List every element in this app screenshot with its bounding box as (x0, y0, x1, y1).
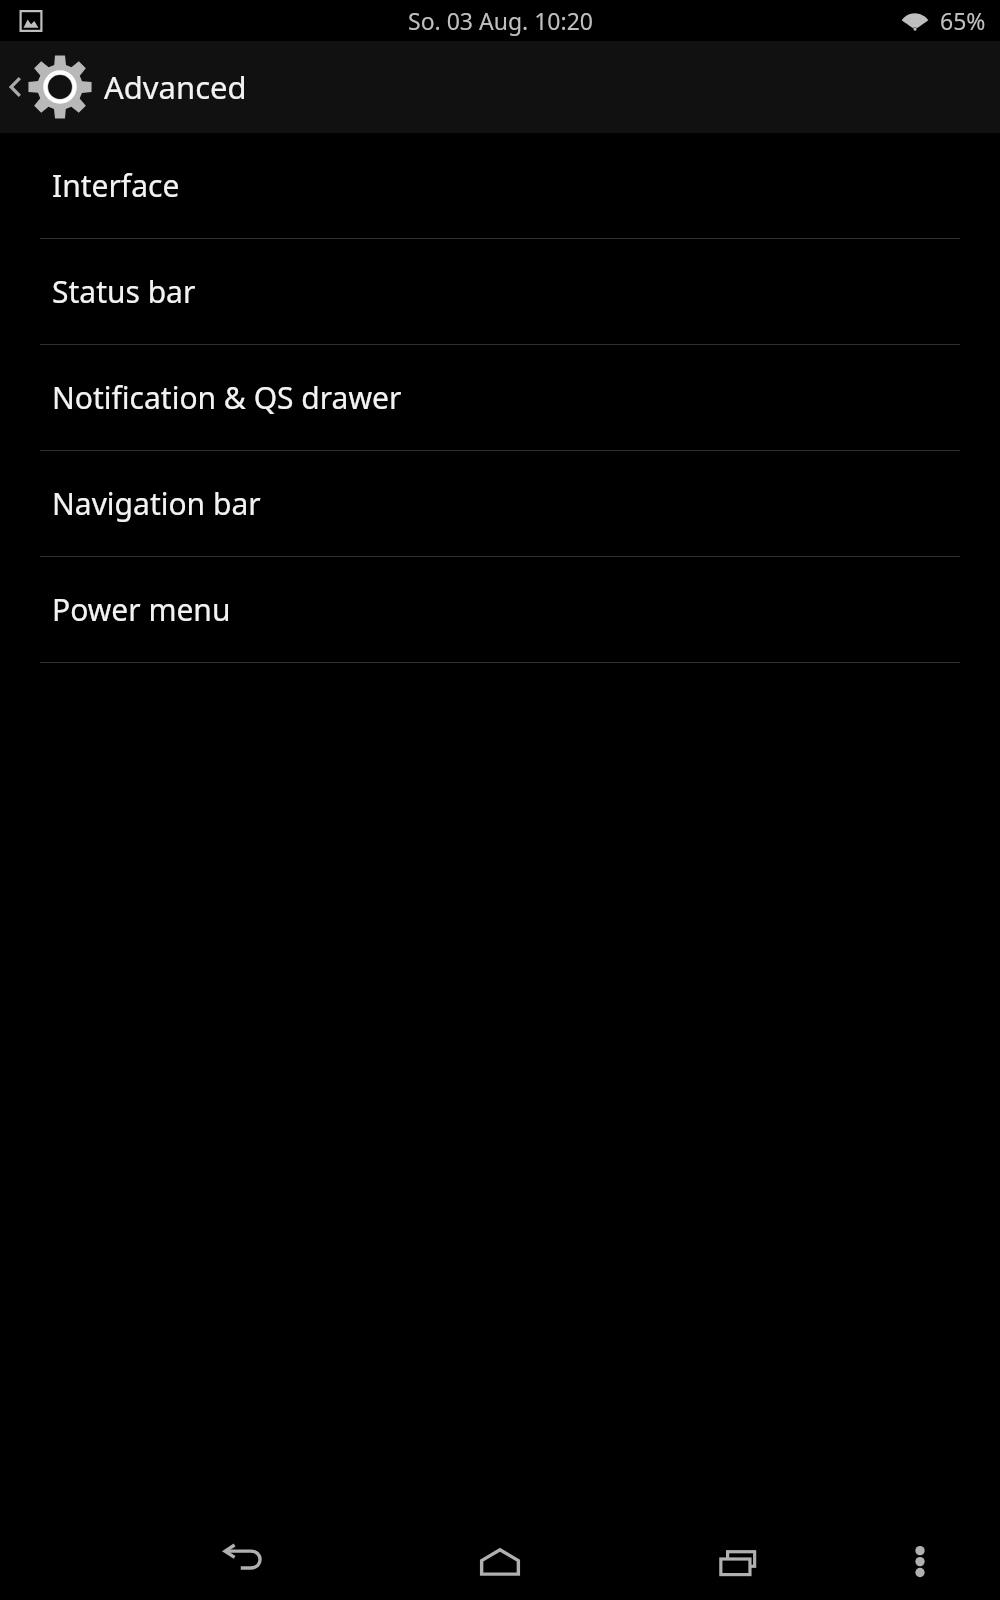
button[interactable]: Status bar (0, 239, 1000, 345)
staticText: 65% (940, 5, 986, 36)
button[interactable]: Power menu (0, 557, 1000, 663)
staticText: Advanced (104, 66, 247, 108)
button[interactable]: Back (0, 41, 1000, 133)
button[interactable]: Back (193, 1495, 293, 1595)
button[interactable]: Recent apps (688, 1495, 788, 1595)
other: Back (4, 67, 26, 107)
staticText: Navigation bar (52, 483, 261, 524)
staticText: Power menu (52, 589, 231, 630)
button[interactable]: Home (450, 1495, 550, 1595)
button[interactable]: Notification & QS drawer (0, 345, 1000, 451)
staticText: So. 03 Aug. 10:20 (408, 5, 593, 36)
button[interactable]: More options (880, 1495, 960, 1595)
staticText: Status bar (52, 271, 196, 312)
staticText: Interface (52, 165, 180, 206)
button[interactable]: Navigation bar (0, 451, 1000, 557)
button[interactable]: Interface (0, 133, 1000, 239)
staticText: Notification & QS drawer (52, 377, 402, 418)
